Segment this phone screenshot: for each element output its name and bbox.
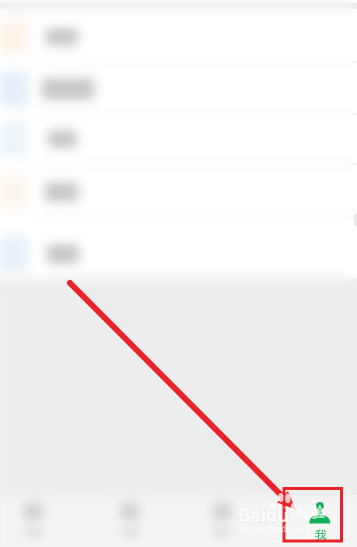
staticText: 经验: [297, 504, 325, 522]
button[interactable]: Me tab: [296, 494, 344, 542]
staticText: jingyan.baidu.com: [240, 523, 310, 534]
staticText: 我: [315, 528, 327, 542]
staticText: Baidu: [239, 503, 289, 527]
staticText: Baidu: [240, 504, 290, 528]
